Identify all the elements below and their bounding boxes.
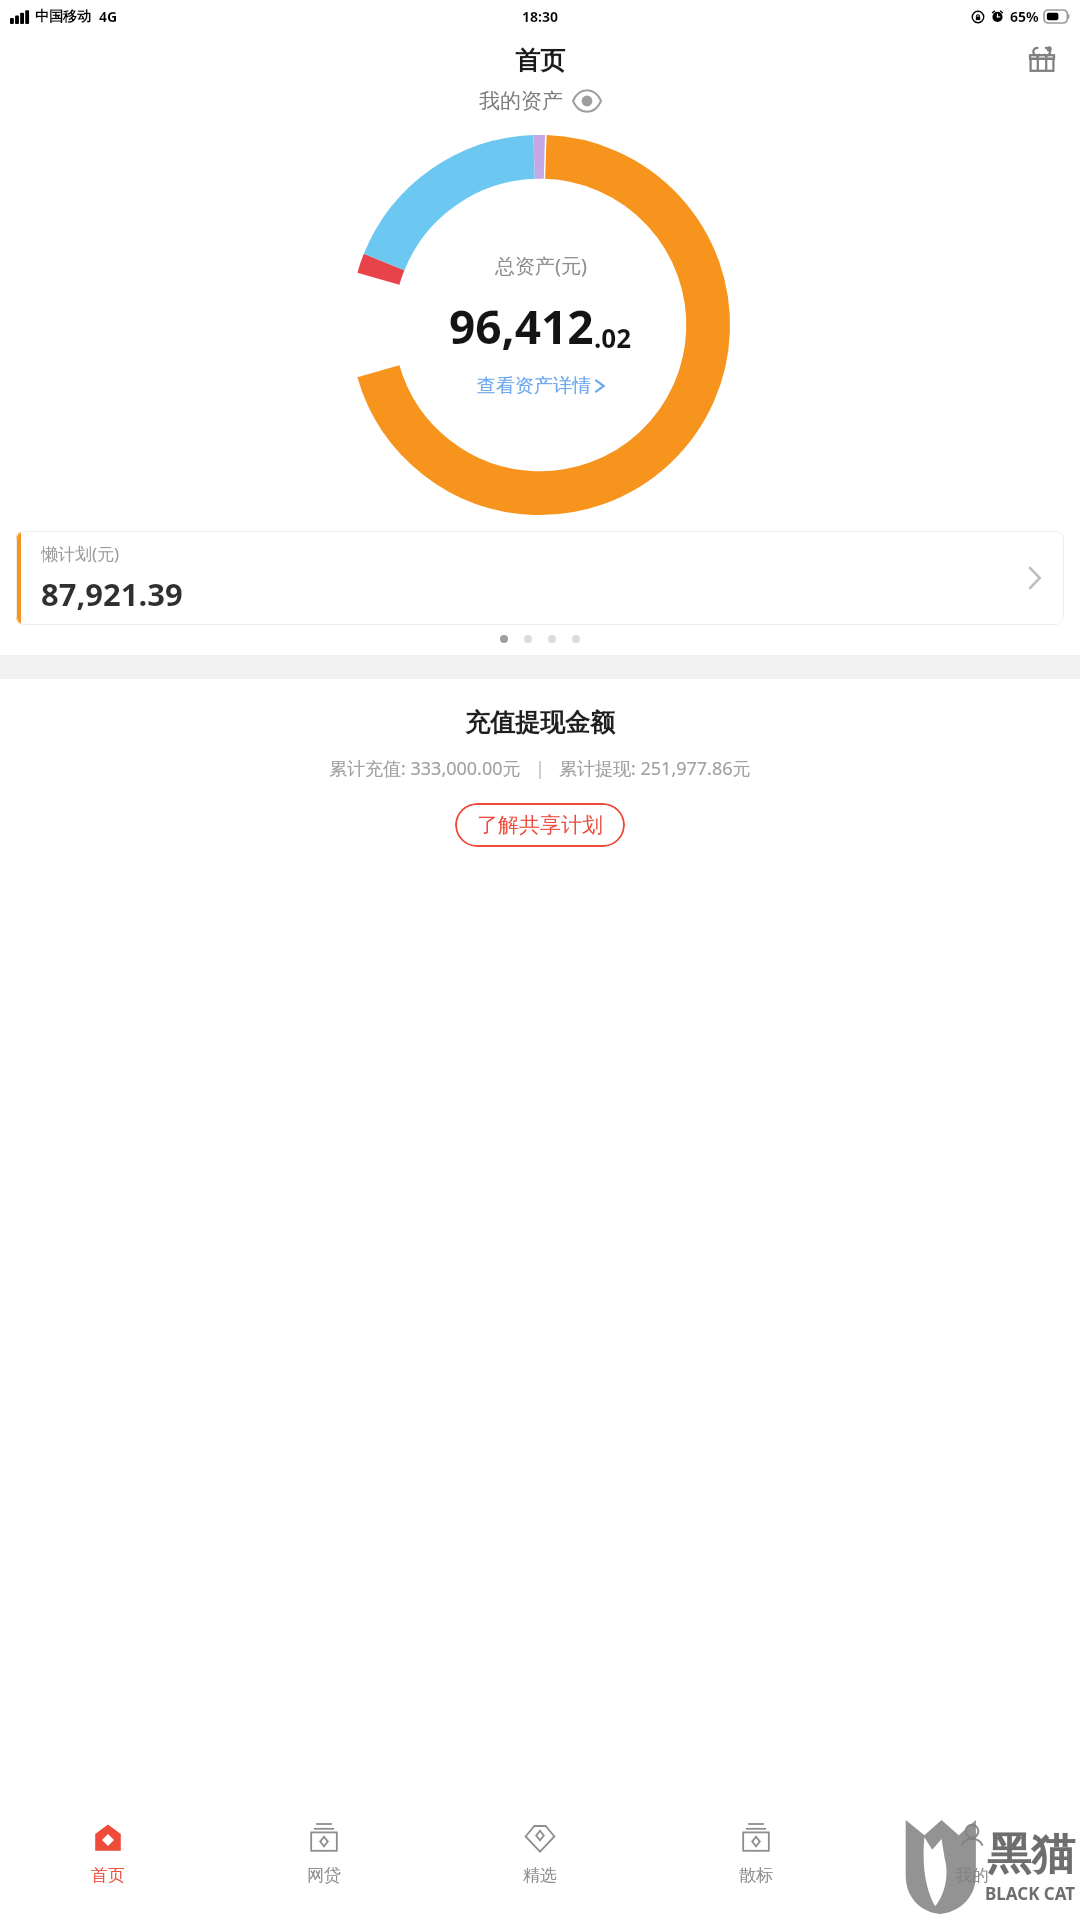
staticText: 4G (99, 7, 118, 26)
staticText: 我的 (955, 1865, 989, 1886)
staticText: BLACK CAT (985, 1882, 1076, 1905)
button[interactable]: 我的资产 (0, 88, 1080, 114)
staticText: 了解共享计划 (477, 812, 603, 838)
staticText: 网贷 (307, 1865, 341, 1886)
staticText: 散标 (739, 1865, 773, 1886)
staticText: 我的资产 (479, 88, 563, 114)
staticText: 精选 (523, 1865, 557, 1886)
staticText: | (535, 756, 545, 781)
staticText: 充值提现金额 (465, 707, 615, 738)
button[interactable]: 网贷 (216, 1808, 432, 1920)
staticText: 中国移动 (35, 8, 91, 26)
staticText: 累计提现: 251,977.86元 (559, 756, 751, 781)
staticText: 查看资产详情 (477, 374, 591, 398)
staticText: 黑猫 (987, 1827, 1075, 1882)
button[interactable]: 查看资产详情 (477, 374, 605, 398)
staticText: 18:30 (522, 7, 558, 26)
button[interactable]: 懒计划(元) (16, 531, 1064, 625)
staticText: 65% (1010, 7, 1039, 26)
staticText: 96,412 (449, 295, 594, 358)
button[interactable]: 了解共享计划 (455, 803, 625, 847)
button[interactable]: 散标 (648, 1808, 864, 1920)
staticText: 总资产(元) (495, 252, 587, 279)
button[interactable]: 精选 (432, 1808, 648, 1920)
staticText: 懒计划(元) (41, 542, 120, 565)
staticText: .02 (594, 320, 632, 355)
staticText: 87,921.39 (41, 573, 183, 615)
button[interactable]: Gifts (1020, 38, 1064, 82)
staticText: 累计充值: 333,000.00元 (329, 756, 521, 781)
button[interactable]: 我的 (864, 1808, 1080, 1920)
staticText: 首页 (91, 1865, 125, 1886)
staticText: 首页 (515, 45, 565, 76)
button[interactable]: 首页 (0, 1808, 216, 1920)
